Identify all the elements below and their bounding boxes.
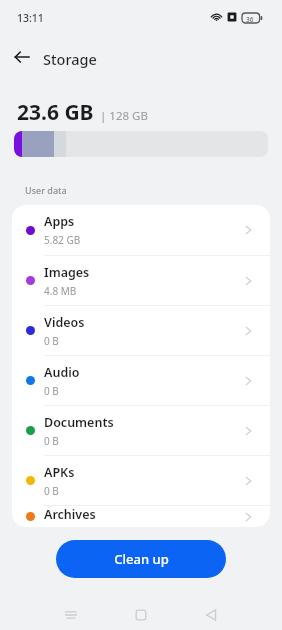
button[interactable]: Documents — [12, 406, 270, 455]
staticText: 23.6 GB — [17, 98, 94, 127]
staticText: Archives — [44, 506, 96, 523]
staticText: Clean up — [114, 550, 169, 568]
button[interactable]: Home — [129, 603, 153, 627]
button[interactable]: Apps — [12, 205, 270, 255]
button[interactable]: Clean up — [56, 540, 226, 578]
button[interactable]: Back — [199, 603, 223, 627]
staticText: 13:11 — [17, 11, 44, 25]
staticText: 4.8 MB — [44, 284, 77, 298]
staticText: Storage — [43, 49, 97, 69]
staticText: 0 B — [44, 484, 59, 498]
staticText: 0 B — [44, 384, 59, 398]
staticText: User data — [25, 184, 67, 196]
staticText: Audio — [44, 364, 80, 381]
staticText: Apps — [44, 213, 75, 230]
staticText: 5.82 GB — [44, 233, 81, 247]
staticText: Documents — [44, 414, 114, 431]
staticText: Videos — [44, 314, 85, 331]
button[interactable]: Back — [10, 45, 34, 69]
button[interactable]: Recents — [59, 603, 83, 627]
button[interactable]: Images — [12, 256, 270, 305]
button[interactable]: Audio — [12, 356, 270, 405]
staticText: 0 B — [44, 334, 59, 348]
staticText: Images — [44, 264, 90, 281]
button[interactable]: APKs — [12, 456, 270, 505]
staticText: | 128 GB — [100, 108, 148, 124]
staticText: APKs — [44, 464, 75, 481]
staticText: 36 — [246, 15, 254, 24]
button[interactable]: Archives — [12, 506, 270, 527]
staticText: 0 B — [44, 434, 59, 448]
button[interactable]: Videos — [12, 306, 270, 355]
